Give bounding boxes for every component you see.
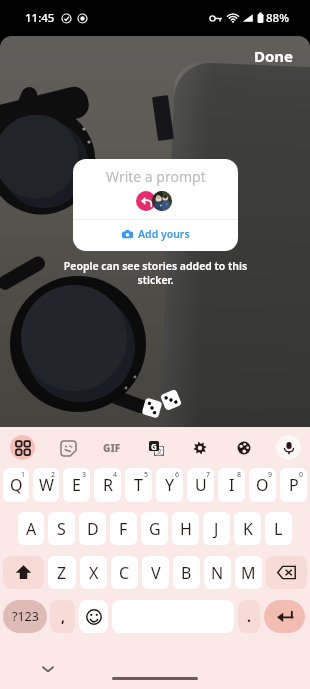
staticText: L xyxy=(274,518,283,540)
staticText: ?123 xyxy=(12,608,39,625)
staticText: 88% xyxy=(266,10,289,26)
button[interactable]: H xyxy=(172,512,199,545)
staticText: 0 xyxy=(299,470,304,480)
button[interactable]: Voice input xyxy=(276,435,301,460)
staticText: 7 xyxy=(206,470,211,480)
button[interactable]: Z xyxy=(48,556,76,589)
button[interactable]: X xyxy=(80,556,107,589)
button[interactable]: F xyxy=(110,512,137,545)
button[interactable]: P xyxy=(280,468,307,502)
staticText: V xyxy=(151,562,161,584)
button[interactable]: Done xyxy=(238,36,310,76)
staticText: Z xyxy=(57,562,67,584)
staticText: D xyxy=(87,518,99,540)
staticText: G xyxy=(149,518,161,540)
button[interactable]: E xyxy=(63,468,90,502)
staticText: R xyxy=(103,474,113,496)
button[interactable]: Y xyxy=(156,468,183,502)
staticText: Done xyxy=(254,46,294,66)
staticText: Q xyxy=(10,474,23,496)
button[interactable]: G xyxy=(141,512,168,545)
staticText: O xyxy=(256,474,269,496)
staticText: 3 xyxy=(82,470,87,480)
staticText: B xyxy=(181,562,192,584)
button[interactable]: K xyxy=(234,512,261,545)
staticText: K xyxy=(243,518,253,540)
button[interactable]: Backspace xyxy=(266,556,307,589)
button[interactable]: . xyxy=(238,600,260,633)
staticText: 2 xyxy=(51,470,56,480)
staticText: Write a prompt xyxy=(106,167,206,186)
button[interactable]: J xyxy=(203,512,230,545)
staticText: 5 xyxy=(144,470,149,480)
button[interactable]: U xyxy=(187,468,214,502)
button[interactable]: , xyxy=(50,600,75,633)
staticText: E xyxy=(72,474,81,496)
button[interactable]: B xyxy=(173,556,200,589)
staticText: 9 xyxy=(268,470,273,480)
staticText: 文 xyxy=(156,447,163,456)
button[interactable]: V xyxy=(142,556,169,589)
staticText: G xyxy=(151,441,157,451)
button[interactable]: L xyxy=(265,512,292,545)
button[interactable]: GIF xyxy=(99,435,125,461)
staticText: U xyxy=(195,474,207,496)
staticText: C xyxy=(119,562,130,584)
staticText: N xyxy=(211,562,224,584)
staticText: I xyxy=(229,474,235,496)
button[interactable]: T xyxy=(125,468,152,502)
button[interactable]: D xyxy=(79,512,106,545)
button[interactable]: Emoji xyxy=(79,600,108,633)
button[interactable]: Stickers xyxy=(55,435,81,461)
button[interactable]: ?123 xyxy=(3,600,47,633)
staticText: P xyxy=(289,474,299,496)
staticText: GIF xyxy=(103,441,121,455)
staticText: 6 xyxy=(175,470,180,480)
button[interactable]: Apps xyxy=(10,435,35,460)
staticText: M xyxy=(241,562,256,584)
button[interactable]: N xyxy=(204,556,231,589)
staticText: People can see stories added to this sti… xyxy=(63,259,248,287)
staticText: F xyxy=(119,518,128,540)
staticText: T xyxy=(134,474,143,496)
button[interactable]: M xyxy=(235,556,262,589)
button[interactable]: Shift xyxy=(3,556,44,589)
button[interactable]: R xyxy=(94,468,121,502)
staticText: 4 xyxy=(113,470,118,480)
staticText: 11:45 xyxy=(25,10,55,26)
staticText: X xyxy=(89,562,99,584)
staticText: H xyxy=(180,518,192,540)
staticText: S xyxy=(57,518,66,540)
staticText: J xyxy=(214,518,219,540)
button[interactable]: C xyxy=(111,556,138,589)
button[interactable]: A xyxy=(18,512,44,545)
button[interactable]: Add yours xyxy=(73,220,238,248)
staticText: Y xyxy=(165,474,175,496)
button[interactable]: Settings xyxy=(187,435,213,461)
button[interactable]: O xyxy=(249,468,276,502)
staticText: 8 xyxy=(237,470,242,480)
button[interactable]: Theme xyxy=(231,435,257,461)
staticText: , xyxy=(61,607,65,626)
button[interactable]: Enter xyxy=(264,600,305,633)
button[interactable]: I xyxy=(218,468,245,502)
button[interactable]: Q xyxy=(3,468,29,502)
button[interactable]: Translate xyxy=(143,435,169,461)
staticText: 1 xyxy=(21,470,26,480)
staticText: . xyxy=(247,607,251,626)
button[interactable]: W xyxy=(33,468,59,502)
staticText: Add yours xyxy=(138,227,190,241)
staticText: A xyxy=(26,518,37,540)
button[interactable]: Hide keyboard xyxy=(36,657,60,681)
button[interactable]: S xyxy=(48,512,75,545)
staticText: W xyxy=(39,474,54,496)
